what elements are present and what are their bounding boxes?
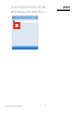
staticText: Lorem ipsum dolor sit amet co <box>11 5 47 9</box>
staticText: 1 / 1 <box>40 104 47 108</box>
staticText: Lorem ipsum <box>5 104 22 108</box>
staticText: adipiscing elit sed do eiusm <box>11 10 47 14</box>
staticText: LOGO <box>63 5 70 9</box>
